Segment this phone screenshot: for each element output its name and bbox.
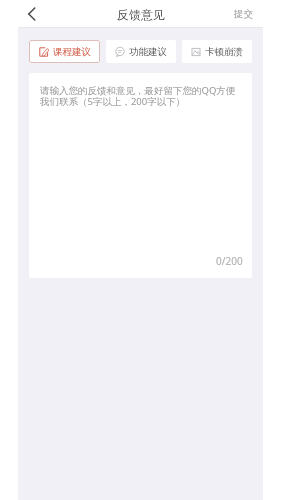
staticText: 课程建议 bbox=[53, 46, 91, 58]
button[interactable]: Back bbox=[22, 4, 42, 24]
staticText: 卡顿崩溃 bbox=[205, 46, 243, 58]
staticText: 请输入您的反馈和意见，最好留下您的QQ方便我们联系（5字以上，200字以下） bbox=[40, 84, 244, 108]
staticText: 反馈意见 bbox=[117, 7, 165, 22]
staticText: 功能建议 bbox=[129, 46, 167, 58]
button[interactable]: 课程建议 bbox=[29, 40, 100, 63]
staticText: 提交 bbox=[234, 8, 253, 20]
staticText: 0/200 bbox=[216, 254, 243, 268]
button[interactable]: 提交 bbox=[234, 8, 253, 20]
button[interactable]: 卡顿崩溃 bbox=[182, 40, 252, 63]
button[interactable]: 请输入您的反馈和意见，最好留下您的QQ方便我们联系（5字以上，200字以下） bbox=[29, 73, 252, 278]
button[interactable]: 功能建议 bbox=[106, 40, 176, 63]
